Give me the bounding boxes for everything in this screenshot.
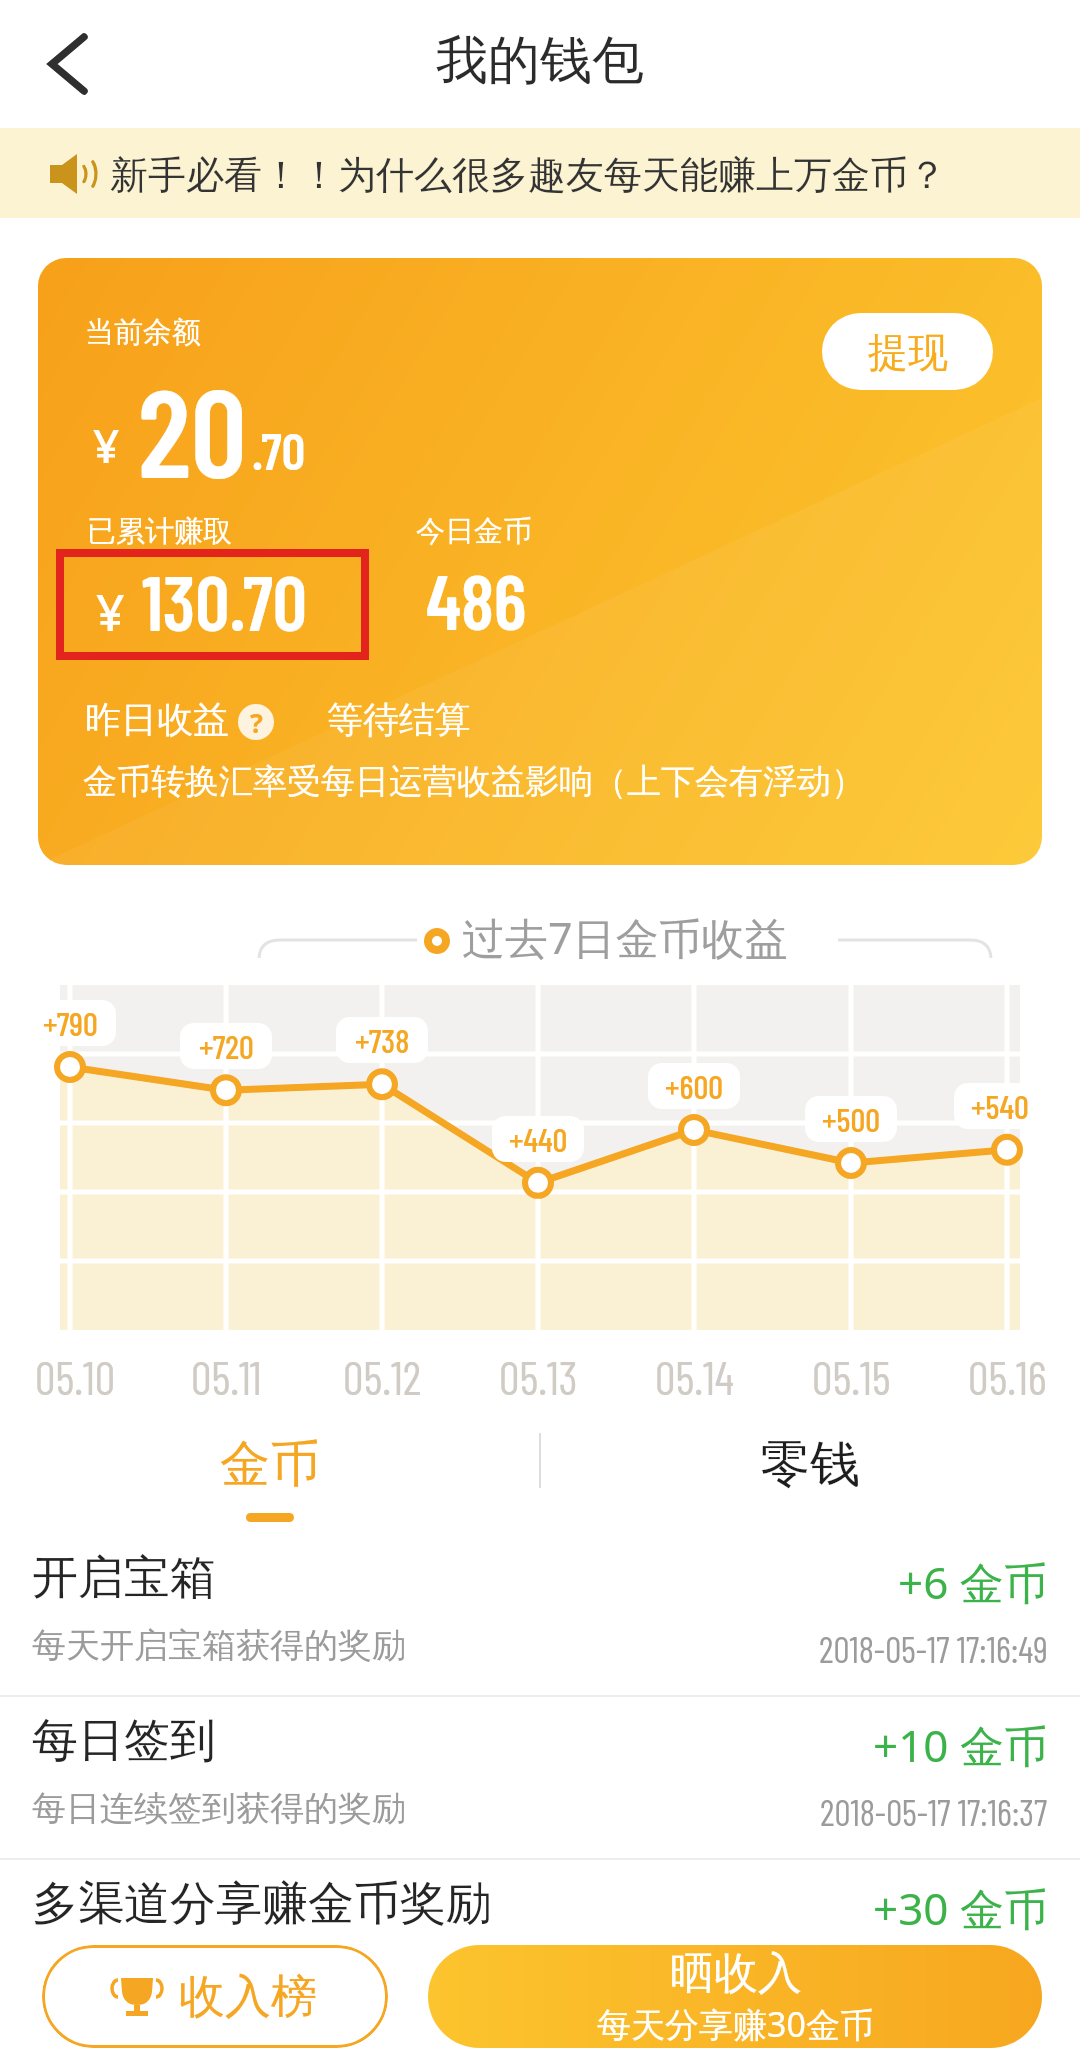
staticText: +738 [355, 1020, 410, 1060]
button[interactable]: 金币 [0, 1425, 540, 1525]
staticText: 05.14 [655, 1349, 734, 1404]
staticText: 05.10 [35, 1349, 116, 1404]
staticText: 多渠道分享赚金币奖励 [32, 1875, 492, 1933]
staticText: 130.70 [142, 555, 308, 646]
staticText: 每天开启宝箱获得的奖励 [32, 1624, 406, 1667]
staticText: +30 金币 [873, 1878, 1048, 1938]
staticText: 昨日收益 [85, 697, 229, 742]
staticText: ¥ [93, 414, 120, 477]
staticText: +600 [665, 1066, 723, 1106]
staticText: 每日连续签到获得的奖励 [32, 1787, 406, 1830]
staticText: 05.15 [812, 1349, 891, 1404]
button[interactable]: 多渠道分享赚金币奖励 [0, 1860, 1080, 2023]
button[interactable]: 新手必看！！为什么很多趣友每天能赚上万金币？ [0, 128, 1080, 218]
staticText: ? [250, 704, 263, 740]
staticText: +540 [971, 1086, 1029, 1126]
staticText: 提现 [868, 327, 948, 377]
staticText: 2018-05-17 17:16:49 [819, 1627, 1048, 1670]
staticText: +10 金币 [873, 1715, 1048, 1775]
staticText: 过去7日金币收益 [462, 908, 788, 967]
button[interactable]: 每日签到 [0, 1697, 1080, 1860]
staticText: 新手必看！！为什么很多趣友每天能赚上万金币？ [110, 151, 946, 199]
staticText: +500 [822, 1099, 880, 1139]
staticText: ¥ [96, 578, 125, 646]
staticText: +790 [43, 1003, 98, 1043]
staticText: 20 [138, 354, 247, 503]
staticText: 当前余额 [85, 314, 201, 351]
button[interactable] [28, 22, 112, 106]
staticText: 晒收入 [670, 1946, 802, 2001]
staticText: 零钱 [760, 1433, 860, 1496]
staticText: 每天分享赚30金币 [597, 2001, 874, 2047]
staticText: 05.11 [191, 1349, 262, 1404]
staticText: 05.12 [343, 1349, 422, 1404]
staticText: 我的钱包 [436, 28, 644, 94]
staticText: 金币 [220, 1433, 320, 1496]
staticText: 已累计赚取 [87, 513, 232, 550]
button[interactable]: 收入榜 [42, 1945, 388, 2048]
staticText: 05.16 [968, 1349, 1047, 1404]
staticText: 2018-05-17 17:16:37 [820, 1790, 1048, 1833]
staticText: +440 [509, 1119, 568, 1159]
staticText: 每日签到 [32, 1712, 216, 1770]
staticText: 收入榜 [179, 1968, 317, 2026]
staticText: 05.13 [499, 1349, 578, 1404]
button[interactable]: 零钱 [540, 1425, 1080, 1525]
staticText: +6 金币 [898, 1552, 1048, 1612]
staticText: .70 [252, 418, 306, 480]
staticText: 等待结算 [327, 697, 471, 742]
staticText: 金币转换汇率受每日运营收益影响（上下会有浮动） [83, 760, 865, 803]
staticText: +720 [199, 1026, 254, 1066]
button[interactable]: 晒收入 [428, 1945, 1042, 2048]
button[interactable]: 开启宝箱 [0, 1534, 1080, 1697]
button[interactable]: 提现 [822, 313, 993, 390]
staticText: 开启宝箱 [32, 1549, 216, 1607]
staticText: 今日金币 [416, 513, 532, 550]
staticText: 486 [426, 554, 527, 645]
